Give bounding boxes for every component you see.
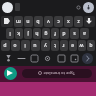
staticText: p — [3, 42, 7, 49]
staticText: n — [26, 18, 30, 25]
button[interactable]: Image — [69, 53, 80, 64]
button[interactable]: Settings — [42, 53, 53, 64]
button[interactable]: k — [15, 28, 23, 39]
staticText: t — [54, 42, 56, 49]
button[interactable]: x — [64, 16, 73, 27]
staticText: s — [73, 30, 76, 37]
staticText: q — [89, 42, 93, 49]
staticText: h — [35, 30, 39, 37]
button[interactable]: s — [70, 28, 79, 39]
button[interactable]: a — [80, 28, 89, 39]
button[interactable]: Send — [4, 67, 17, 80]
button[interactable]: j — [24, 28, 32, 39]
button[interactable]: d — [60, 28, 69, 39]
button[interactable]: g — [42, 28, 50, 39]
button[interactable]: e — [69, 40, 77, 51]
staticText: z — [77, 18, 80, 25]
button[interactable]: Voice input — [83, 2, 94, 13]
button[interactable]: Stickers — [29, 53, 40, 64]
button[interactable]: c — [54, 16, 63, 27]
staticText: i — [24, 42, 26, 49]
staticText: o — [13, 42, 17, 49]
button[interactable]: Keyboard menu — [2, 2, 13, 13]
staticText: g — [44, 30, 48, 37]
button[interactable]: q — [87, 40, 95, 51]
staticText: b — [36, 18, 40, 25]
button[interactable]: b — [34, 16, 43, 27]
staticText: x — [67, 18, 70, 25]
button[interactable]: t — [51, 40, 59, 51]
button[interactable]: i — [21, 40, 30, 51]
button[interactable]: u — [31, 40, 40, 51]
button[interactable]: More — [82, 53, 93, 64]
button[interactable]: n — [24, 16, 33, 27]
staticText: k — [17, 30, 20, 37]
button[interactable]: GIF — [56, 53, 67, 64]
staticText: e — [71, 42, 74, 49]
staticText: f — [54, 30, 56, 37]
button[interactable]: Translate — [3, 53, 14, 64]
staticText: r — [62, 42, 65, 49]
staticText: w — [79, 42, 84, 49]
staticText: a — [83, 30, 86, 37]
staticText: d — [62, 30, 66, 37]
button[interactable]: l — [6, 28, 14, 39]
staticText: u — [33, 42, 37, 49]
button[interactable]: f — [51, 28, 59, 39]
button[interactable]: Type to translate — [22, 69, 92, 78]
button[interactable]: Search — [74, 3, 83, 12]
button[interactable]: Clipboard — [16, 53, 27, 64]
button[interactable]: Backspace — [1, 16, 13, 27]
button[interactable]: v — [44, 16, 53, 27]
button[interactable]: h — [33, 28, 41, 39]
button[interactable]: y — [41, 40, 50, 51]
button[interactable]: w — [78, 40, 86, 51]
button[interactable]: r — [60, 40, 68, 51]
button[interactable]: Shift — [84, 16, 95, 27]
button[interactable]: m — [14, 16, 23, 27]
staticText: Type to translate — [43, 71, 75, 76]
staticText: l — [9, 30, 11, 37]
button[interactable]: o — [11, 40, 20, 51]
staticText: m — [16, 18, 21, 25]
button[interactable]: z — [74, 16, 83, 27]
staticText: j — [27, 30, 29, 37]
staticText: v — [47, 18, 50, 25]
button[interactable]: p — [1, 40, 10, 51]
staticText: y — [44, 42, 47, 49]
staticText: c — [57, 18, 60, 25]
